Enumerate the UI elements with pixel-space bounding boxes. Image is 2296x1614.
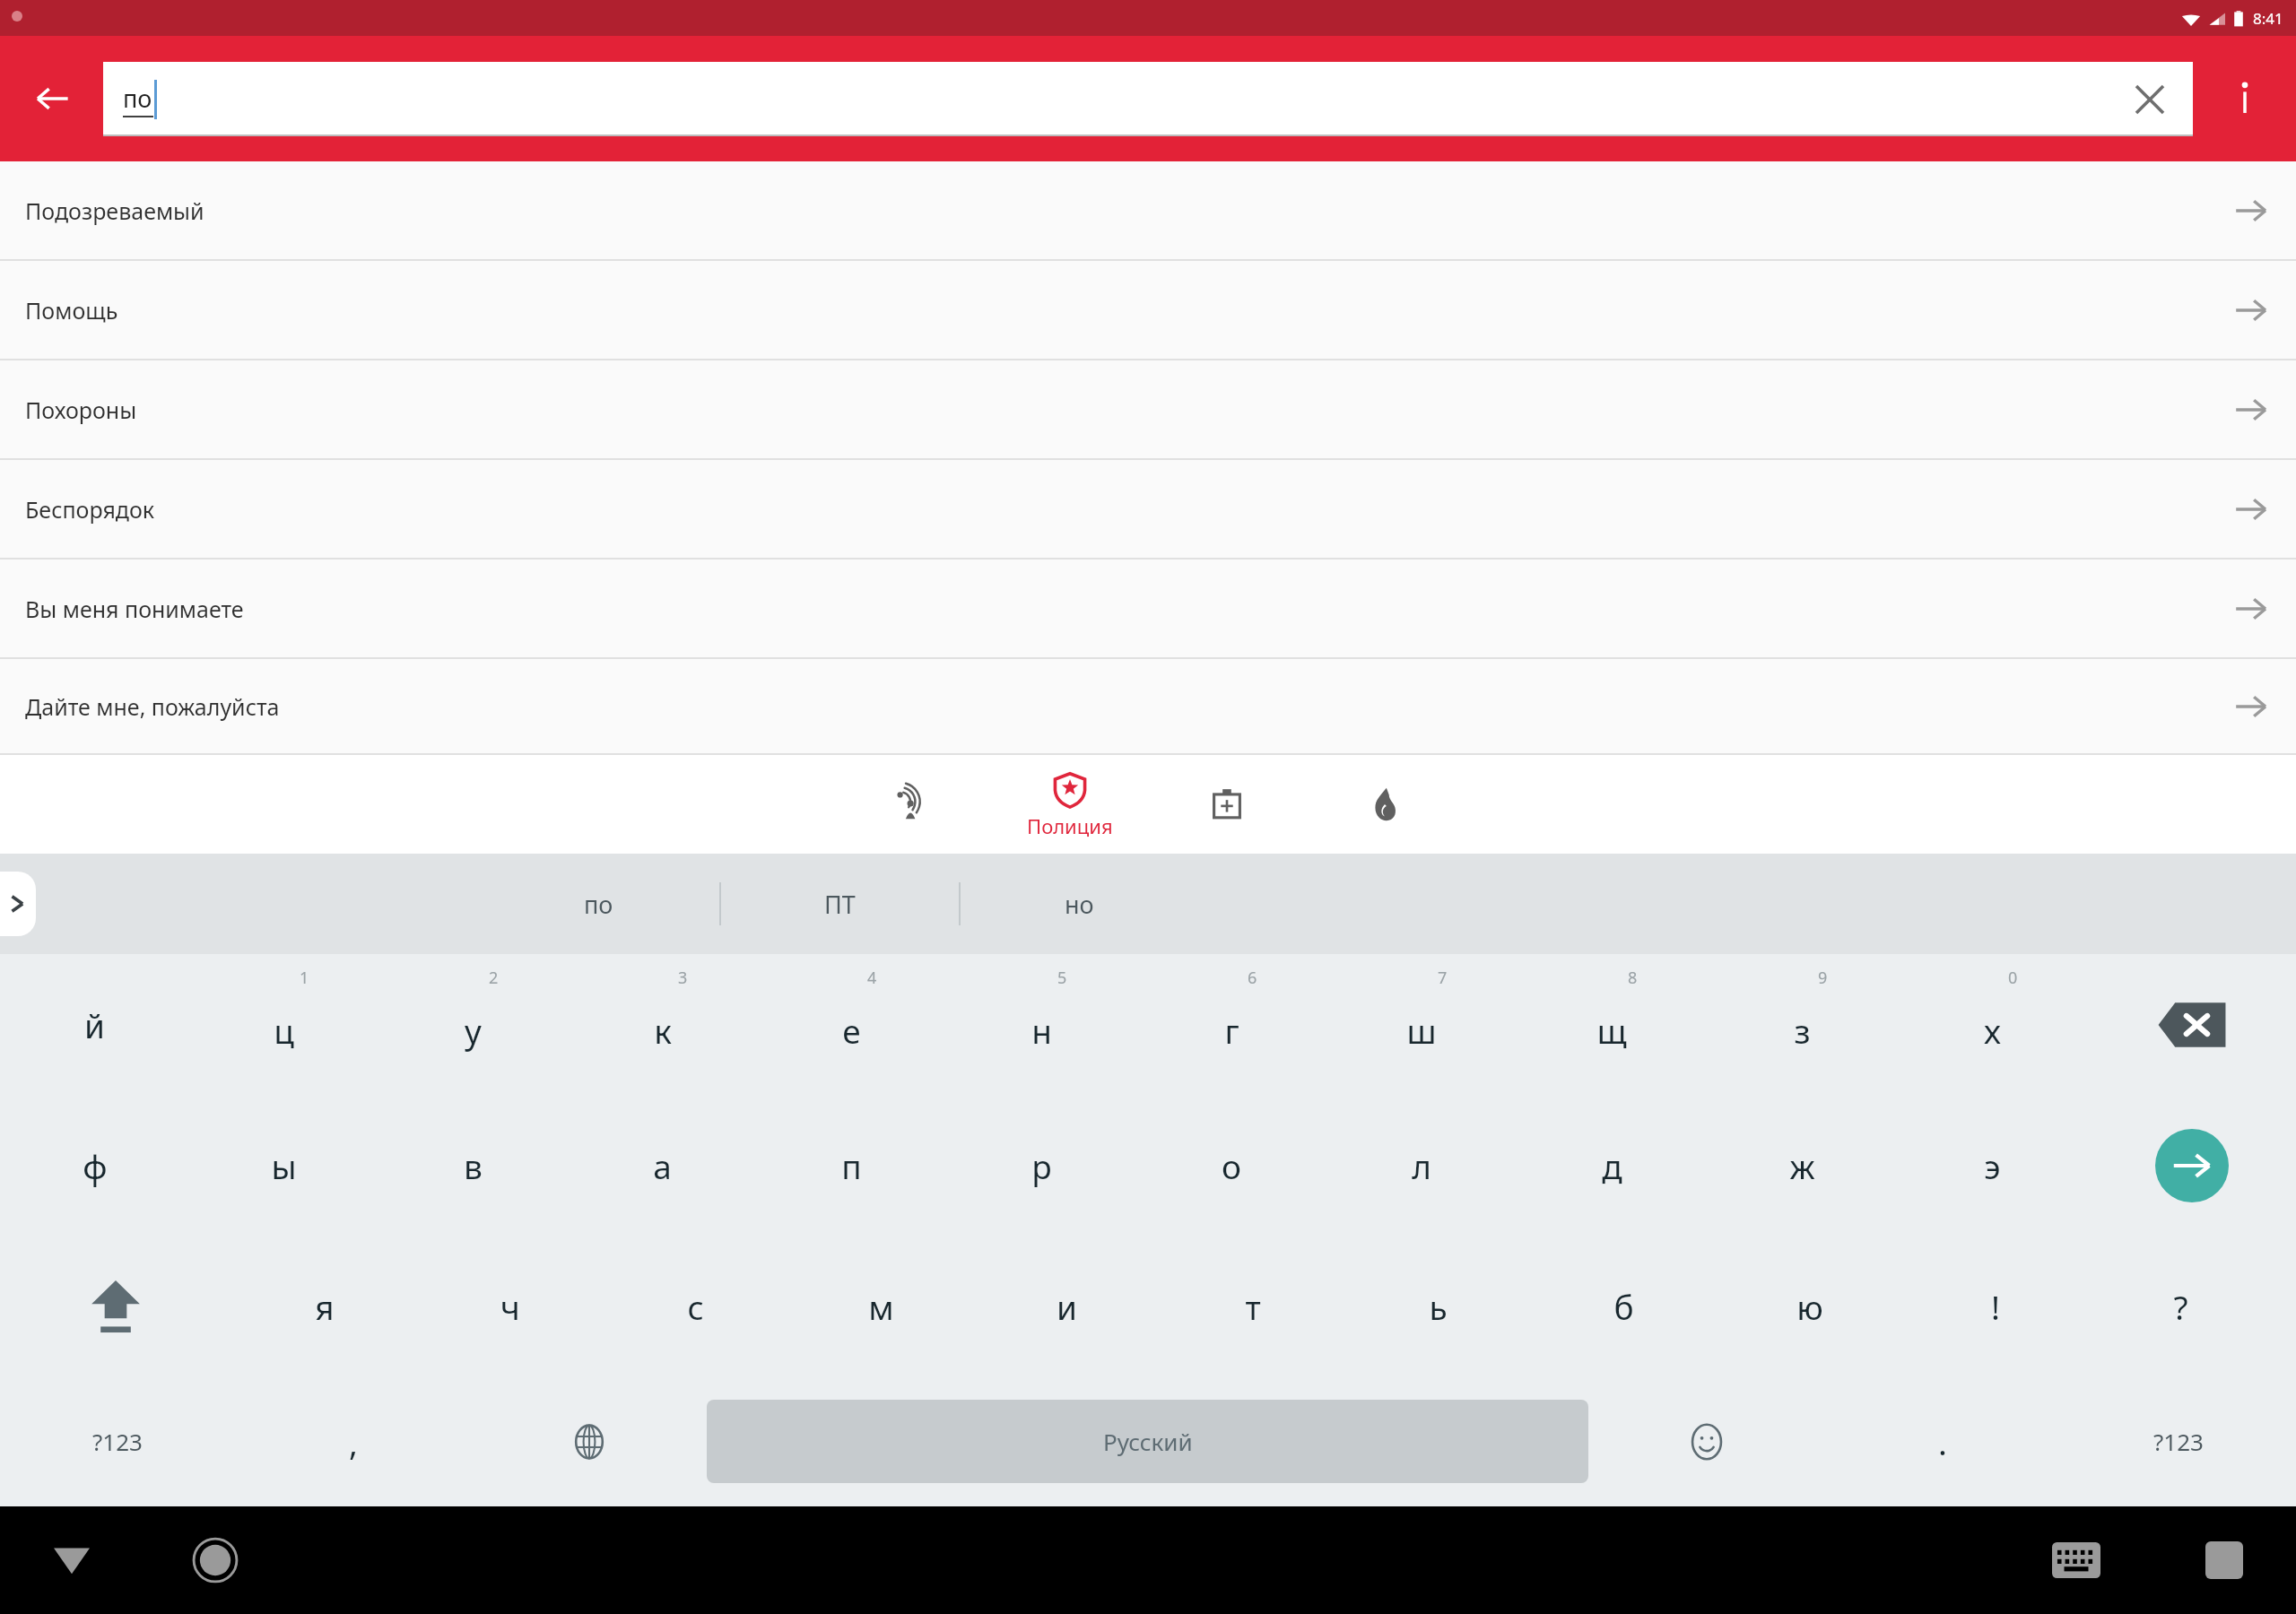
- button[interactable]: м: [788, 1236, 974, 1376]
- button[interactable]: Беспорядок: [0, 460, 2296, 558]
- staticText: 8: [1628, 967, 1638, 989]
- button[interactable]: Recent apps: [2152, 1506, 2296, 1614]
- button[interactable]: Clear: [2121, 71, 2179, 128]
- staticText: э: [1984, 1143, 2001, 1188]
- staticText: но: [1065, 888, 1094, 921]
- staticText: ?123: [2153, 1426, 2204, 1457]
- button[interactable]: 0: [1897, 954, 2087, 1095]
- staticText: з: [1794, 1008, 1811, 1053]
- button[interactable]: 6: [1136, 954, 1326, 1095]
- staticText: по: [584, 888, 613, 921]
- staticText: ПТ: [824, 888, 856, 921]
- button[interactable]: 1: [189, 954, 378, 1095]
- button[interactable]: ?123: [2060, 1376, 2296, 1506]
- button[interactable]: Back: [0, 36, 103, 161]
- staticText: г: [1224, 1008, 1239, 1053]
- button[interactable]: й: [0, 954, 189, 1095]
- button[interactable]: п: [757, 1095, 946, 1236]
- staticText: н: [1031, 1008, 1052, 1053]
- button[interactable]: Shift: [0, 1236, 231, 1376]
- button[interactable]: Пожар: [1305, 753, 1462, 854]
- staticText: Русский: [1103, 1426, 1193, 1457]
- staticText: ш: [1406, 1008, 1437, 1053]
- button[interactable]: ,: [235, 1376, 471, 1506]
- staticText: 2: [489, 967, 499, 989]
- button[interactable]: 3: [568, 954, 757, 1095]
- button[interactable]: Полиция: [991, 753, 1148, 854]
- button[interactable]: Русский: [707, 1400, 1588, 1483]
- button[interactable]: р: [946, 1095, 1136, 1236]
- staticText: л: [1412, 1143, 1431, 1188]
- button[interactable]: Разговор: [834, 753, 991, 854]
- button[interactable]: ж: [1707, 1095, 1897, 1236]
- button[interactable]: т: [1160, 1236, 1345, 1376]
- button[interactable]: Вы меня понимаете: [0, 560, 2296, 657]
- button[interactable]: ы: [189, 1095, 378, 1236]
- staticText: ?: [2173, 1284, 2188, 1329]
- staticText: ы: [271, 1143, 297, 1188]
- button[interactable]: ?: [2088, 1236, 2274, 1376]
- button[interactable]: 7: [1326, 954, 1517, 1095]
- button[interactable]: Похороны: [0, 360, 2296, 458]
- button[interactable]: ч: [417, 1236, 603, 1376]
- staticText: Полиция: [1027, 812, 1113, 839]
- button[interactable]: 2: [378, 954, 568, 1095]
- button[interactable]: More suggestions: [0, 872, 36, 936]
- button[interactable]: по: [103, 62, 2193, 136]
- button[interactable]: а: [568, 1095, 757, 1236]
- button[interactable]: Info: [2193, 36, 2296, 161]
- staticText: ь: [1429, 1284, 1448, 1329]
- button[interactable]: я: [231, 1236, 417, 1376]
- button[interactable]: 4: [757, 954, 946, 1095]
- button[interactable]: Медицина: [1148, 753, 1305, 854]
- staticText: Беспорядок: [25, 494, 2233, 525]
- button[interactable]: Дайте мне, пожалуйста: [0, 659, 2296, 753]
- staticText: ю: [1796, 1284, 1823, 1329]
- button[interactable]: 5: [946, 954, 1136, 1095]
- button[interactable]: 8: [1517, 954, 1707, 1095]
- staticText: Помощь: [25, 295, 2233, 325]
- staticText: м: [868, 1284, 894, 1329]
- button[interactable]: о: [1136, 1095, 1326, 1236]
- button[interactable]: Enter: [2087, 1095, 2296, 1236]
- button[interactable]: с: [603, 1236, 788, 1376]
- staticText: о: [1222, 1143, 1241, 1188]
- button[interactable]: б: [1531, 1236, 1717, 1376]
- button[interactable]: ь: [1345, 1236, 1531, 1376]
- staticText: ж: [1789, 1143, 1815, 1188]
- button[interactable]: ПТ: [721, 854, 959, 954]
- staticText: 9: [1818, 967, 1828, 989]
- staticText: 5: [1057, 967, 1067, 989]
- button[interactable]: но: [961, 854, 1198, 954]
- button[interactable]: э: [1897, 1095, 2087, 1236]
- button[interactable]: л: [1326, 1095, 1517, 1236]
- button[interactable]: ?123: [0, 1376, 235, 1506]
- button[interactable]: по: [477, 854, 719, 954]
- button[interactable]: д: [1517, 1095, 1707, 1236]
- staticText: 1: [300, 967, 309, 989]
- staticText: б: [1613, 1284, 1634, 1329]
- staticText: Дайте мне, пожалуйста: [25, 691, 2233, 722]
- button[interactable]: Change language: [471, 1376, 707, 1506]
- button[interactable]: Помощь: [0, 261, 2296, 359]
- button[interactable]: Emoji: [1588, 1376, 1824, 1506]
- staticText: .: [1938, 1419, 1947, 1464]
- staticText: по: [123, 82, 152, 115]
- button[interactable]: Home: [143, 1506, 287, 1614]
- button[interactable]: !: [1902, 1236, 2088, 1376]
- button[interactable]: и: [974, 1236, 1160, 1376]
- staticText: и: [1057, 1284, 1077, 1329]
- button[interactable]: 9: [1707, 954, 1897, 1095]
- button[interactable]: Подозреваемый: [0, 161, 2296, 259]
- staticText: ,: [349, 1419, 358, 1464]
- staticText: ?123: [92, 1426, 143, 1457]
- staticText: п: [841, 1143, 862, 1188]
- button[interactable]: Backspace: [2087, 954, 2296, 1095]
- staticText: а: [653, 1143, 672, 1188]
- button[interactable]: .: [1824, 1376, 2060, 1506]
- button[interactable]: ф: [0, 1095, 189, 1236]
- button[interactable]: в: [378, 1095, 568, 1236]
- button[interactable]: ю: [1717, 1236, 1902, 1376]
- button[interactable]: Hide keyboard: [0, 1506, 143, 1614]
- button[interactable]: Switch keyboard: [2000, 1506, 2152, 1614]
